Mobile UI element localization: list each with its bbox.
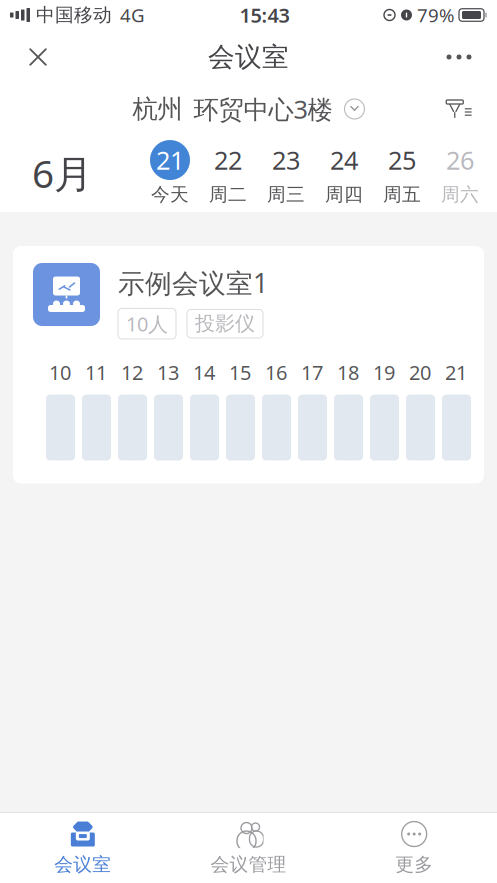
staticText: 周四 xyxy=(325,183,363,206)
button[interactable]: 杭州 xyxy=(126,84,370,134)
staticText: 11 xyxy=(85,359,107,386)
staticText: 6月 xyxy=(32,147,93,199)
staticText: 周三 xyxy=(267,183,305,206)
button[interactable]: 更多 xyxy=(331,812,497,883)
staticText: 15:43 xyxy=(239,2,289,28)
staticText: 今天 xyxy=(151,183,189,206)
button[interactable]: More options xyxy=(433,31,485,83)
button[interactable]: 24 xyxy=(315,138,373,208)
staticText: 环贸中心3楼 xyxy=(193,92,332,126)
staticText: 周六 xyxy=(441,183,479,206)
staticText: 周五 xyxy=(383,183,421,206)
staticText: 会议室 xyxy=(208,41,289,73)
staticText: 24 xyxy=(330,143,358,177)
staticText: 20 xyxy=(409,359,431,386)
staticText: 中国移动 xyxy=(36,3,112,26)
staticText: 投影仪 xyxy=(195,311,255,336)
staticText: 25 xyxy=(388,143,416,177)
staticText: 21 xyxy=(156,143,184,177)
staticText: 10 xyxy=(49,359,71,386)
staticText: 杭州 xyxy=(132,93,182,124)
staticText: 23 xyxy=(272,143,300,177)
staticText: 会议管理 xyxy=(210,853,286,876)
staticText: 14 xyxy=(193,359,215,386)
button[interactable]: Filter xyxy=(435,87,483,131)
staticText: 会议室 xyxy=(54,853,111,876)
button[interactable]: 会议管理 xyxy=(166,812,331,883)
staticText: 4G xyxy=(120,3,145,27)
staticText: 21 xyxy=(445,359,467,386)
staticText: 19 xyxy=(373,359,395,386)
staticText: 18 xyxy=(337,359,359,386)
button[interactable]: 示例会议室1 xyxy=(13,246,484,483)
staticText: 16 xyxy=(265,359,287,386)
button[interactable]: 26 xyxy=(431,138,489,208)
staticText: 示例会议室1 xyxy=(118,265,268,300)
button[interactable]: Close xyxy=(12,31,64,83)
staticText: 22 xyxy=(214,143,242,177)
staticText: 10人 xyxy=(126,310,168,337)
button[interactable]: 会议室 xyxy=(0,812,166,883)
staticText: 79% xyxy=(417,3,455,27)
staticText: 15 xyxy=(229,359,251,386)
staticText: 17 xyxy=(301,359,323,386)
button[interactable]: 25 xyxy=(373,138,431,208)
staticText: 13 xyxy=(157,359,179,386)
staticText: 26 xyxy=(446,143,474,177)
button[interactable]: 22 xyxy=(199,138,257,208)
staticText: 12 xyxy=(121,359,143,386)
staticText: 更多 xyxy=(395,853,433,876)
button[interactable]: 23 xyxy=(257,138,315,208)
button[interactable]: 21 xyxy=(141,138,199,208)
staticText: 周二 xyxy=(209,183,247,206)
